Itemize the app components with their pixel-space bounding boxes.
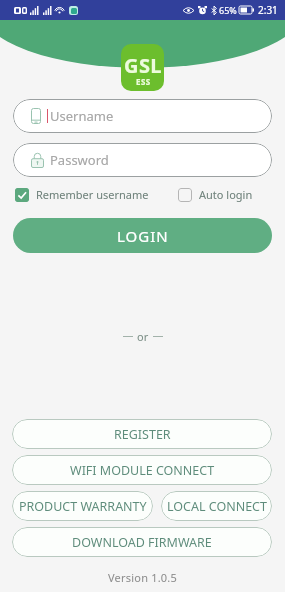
staticText: or [137, 329, 149, 344]
staticText: GSL [124, 52, 162, 79]
button[interactable]: Password [13, 143, 272, 177]
staticText: DOWNLOAD FIRMWARE [72, 534, 212, 551]
button[interactable]: LOCAL CONNECT [161, 491, 272, 521]
button[interactable]: REGISTER [12, 419, 272, 449]
button[interactable]: Auto login [178, 187, 253, 202]
staticText: Username [50, 107, 114, 125]
button[interactable]: LOGIN [13, 218, 272, 253]
button[interactable]: PRODUCT WARRANTY [12, 491, 153, 521]
staticText: Password [50, 151, 109, 169]
staticText: LOGIN [117, 226, 169, 246]
staticText: REGISTER [114, 426, 171, 443]
staticText: Version 1.0.5 [0, 570, 285, 585]
staticText: Remember username [36, 187, 149, 202]
button[interactable]: Remember username [15, 187, 149, 202]
staticText: 2:31 [258, 3, 278, 17]
button[interactable]: Username [13, 99, 272, 133]
staticText: PRODUCT WARRANTY [19, 498, 147, 515]
staticText: Auto login [199, 187, 253, 202]
staticText: ESS [136, 76, 151, 87]
staticText: WIFI MODULE CONNECT [70, 462, 215, 479]
button[interactable]: WIFI MODULE CONNECT [12, 455, 272, 485]
staticText: 65% [219, 4, 237, 16]
button[interactable]: DOWNLOAD FIRMWARE [12, 527, 272, 557]
staticText: LOCAL CONNECT [167, 498, 267, 515]
